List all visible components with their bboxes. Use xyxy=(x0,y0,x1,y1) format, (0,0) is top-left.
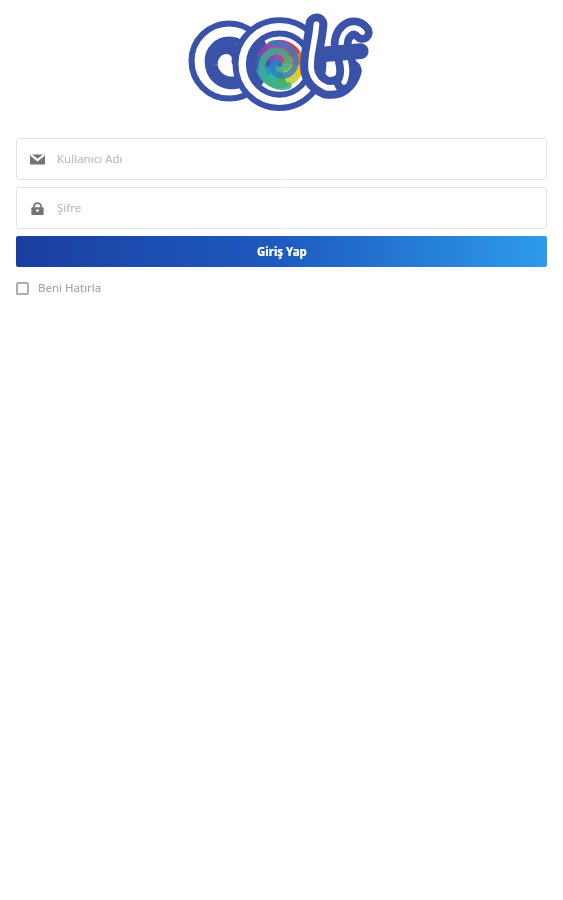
button[interactable]: Şifre xyxy=(16,187,547,229)
staticText: Giriş Yap xyxy=(257,244,307,260)
button[interactable]: Beni Hatırla xyxy=(16,276,102,300)
other: Golf logo xyxy=(198,17,366,105)
staticText: Beni Hatırla xyxy=(38,280,102,296)
button[interactable]: Giriş Yap xyxy=(16,236,547,267)
staticText: Kullanıcı Adı xyxy=(57,151,123,167)
staticText: Şifre xyxy=(57,200,82,216)
button[interactable]: Kullanıcı Adı xyxy=(16,138,547,180)
